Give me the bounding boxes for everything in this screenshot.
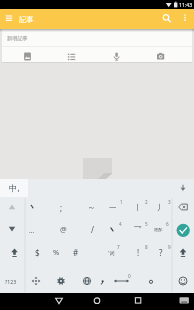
staticText: 中, — [9, 182, 20, 194]
button[interactable] — [106, 51, 126, 61]
staticText: 7 — [117, 244, 120, 250]
staticText: 11:43 — [179, 1, 193, 8]
staticText: ?123 — [5, 278, 17, 285]
staticText: 新增記事 — [7, 35, 28, 42]
staticText: 通配 — [154, 227, 163, 232]
staticText: 4 — [119, 221, 122, 227]
button[interactable] — [61, 51, 81, 61]
staticText: 丨 — [134, 203, 142, 212]
staticText: ; — [60, 202, 63, 213]
staticText: ～ — [87, 202, 96, 213]
staticText: 2 — [145, 199, 148, 205]
staticText: 8 — [145, 244, 148, 250]
staticText: @ — [60, 224, 67, 234]
staticText: … — [29, 226, 35, 235]
staticText: 乛 — [134, 225, 142, 234]
staticText: 記事 — [19, 15, 34, 24]
staticText: 1 — [120, 199, 123, 205]
button[interactable]: 新增記事 — [2, 29, 192, 46]
button[interactable] — [64, 293, 129, 310]
staticText: 9 — [168, 244, 171, 250]
staticText: ! — [137, 247, 140, 258]
staticText: '词 — [108, 249, 115, 256]
button[interactable] — [129, 293, 194, 310]
staticText: 5 — [145, 221, 148, 227]
staticText: 3 — [168, 199, 171, 205]
staticText: / — [91, 224, 94, 235]
staticText: 一 — [109, 203, 117, 212]
button[interactable] — [17, 51, 37, 61]
staticText: 6 — [166, 221, 169, 227]
staticText: 0 — [128, 273, 131, 279]
button[interactable] — [150, 51, 170, 61]
staticText: $ — [35, 247, 40, 258]
staticText: # — [73, 247, 79, 258]
button[interactable]: 記事 — [0, 9, 194, 29]
staticText: ? — [159, 247, 163, 258]
staticText: % — [53, 247, 60, 257]
button[interactable] — [0, 293, 64, 310]
staticText: 丿 — [157, 203, 165, 212]
